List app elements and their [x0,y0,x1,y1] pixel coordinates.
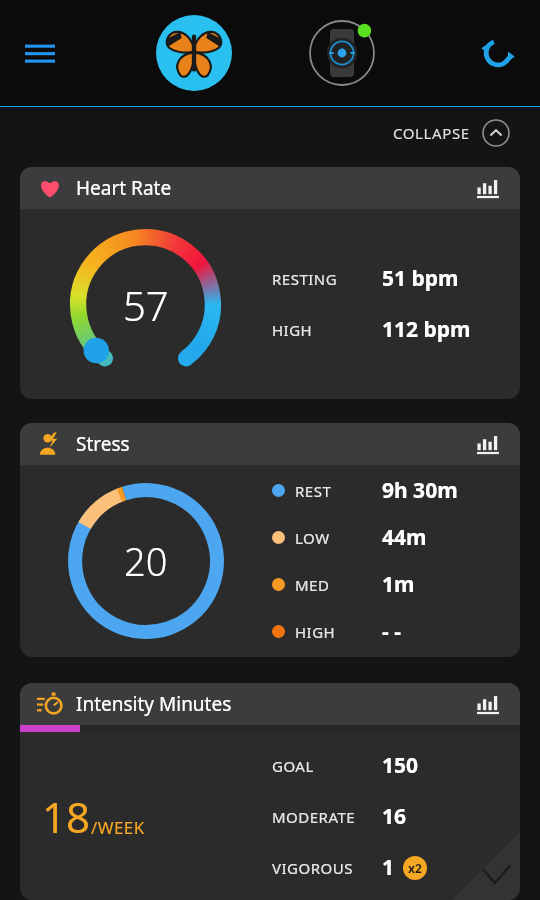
staticText: HIGH [272,320,382,340]
staticText: HIGH [295,622,382,642]
button[interactable]: Menu [14,27,66,79]
staticText: COLLAPSE [393,123,470,143]
staticText: VIGOROUS [272,858,382,878]
button[interactable]: Chart [474,174,502,202]
staticText: MED [295,575,382,595]
button[interactable]: Chart [474,690,502,718]
button[interactable]: Device [302,13,382,93]
staticText: Intensity Minutes [76,691,232,717]
staticText: 16 [382,802,407,831]
button[interactable]: Goal met [452,832,520,900]
staticText: Heart Rate [76,175,172,201]
button[interactable]: COLLAPSE [387,113,516,153]
staticText: MODERATE [272,807,382,827]
button[interactable]: Profile [156,15,232,91]
staticText: - - [382,617,401,646]
staticText: 18 [42,788,91,845]
staticText: RESTING [272,269,382,289]
staticText: /WEEK [91,816,145,839]
staticText: 1 [382,853,395,882]
staticText: x2 [408,860,422,876]
button[interactable]: Heart Rate [20,167,520,209]
staticText: REST [295,481,382,501]
button[interactable]: Stress [20,423,520,465]
staticText: 57 [123,278,169,332]
staticText: Stress [76,431,130,457]
staticText: 9h 30m [382,476,458,505]
staticText: LOW [295,528,382,548]
button[interactable]: Chart [474,430,502,458]
staticText: 20 [124,535,168,587]
staticText: 1m [382,570,415,599]
staticText: 150 [382,751,419,780]
button[interactable]: Sync [470,25,526,81]
staticText: 44m [382,523,427,552]
button[interactable]: Intensity Minutes [20,683,520,725]
staticText: 112 bpm [382,315,471,344]
staticText: GOAL [272,756,382,776]
staticText: 51 bpm [382,264,459,293]
